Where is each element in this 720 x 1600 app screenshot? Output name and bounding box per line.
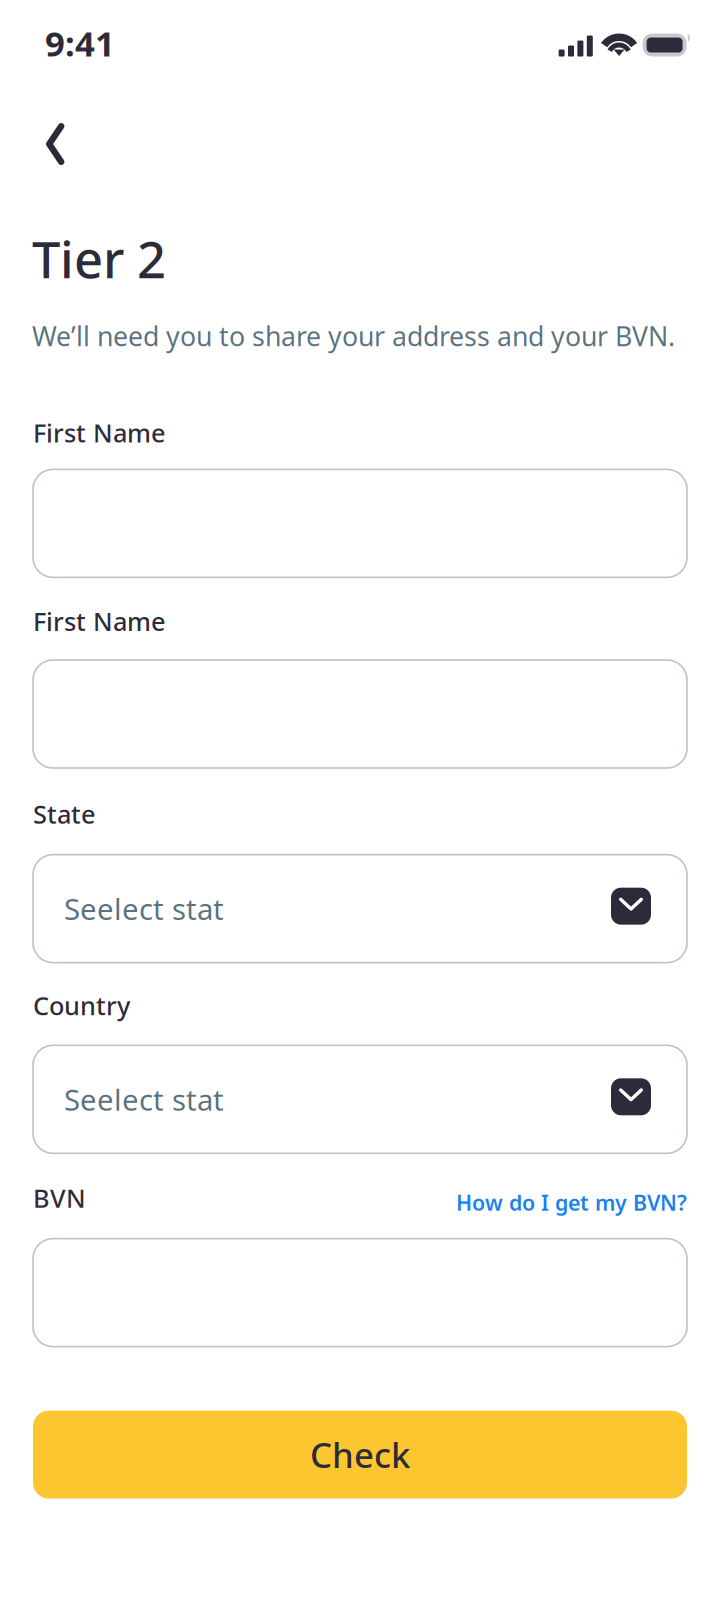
staticText: First Name [33,416,166,449]
staticText: First Name [33,604,166,638]
staticText: Tier 2 [32,225,166,292]
button[interactable]: How do I get my BVN? [456,1179,687,1217]
staticText: Country [33,989,130,1022]
button[interactable]: Seelect stat [33,1045,687,1153]
staticText: Seelect stat [64,889,224,928]
button[interactable]: Seelect stat [33,855,687,963]
staticText: 9:41 [45,20,115,66]
button[interactable]: Check [33,1411,687,1499]
staticText: Seelect stat [64,1080,224,1119]
staticText: How do I get my BVN? [456,1188,687,1217]
staticText: We’ll need you to share your address and… [32,318,675,354]
staticText: State [33,797,96,831]
staticText: Check [310,1432,410,1478]
button[interactable]: Back [0,111,90,179]
staticText: BVN [33,1181,86,1215]
